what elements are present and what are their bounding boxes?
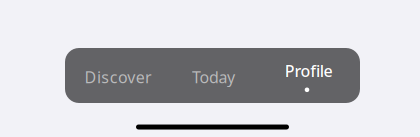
button[interactable]: Discover <box>71 48 166 103</box>
staticText: Profile <box>285 60 333 81</box>
staticText: Discover <box>85 66 152 88</box>
button[interactable]: Today <box>166 48 261 103</box>
staticText: Today <box>192 66 235 88</box>
button[interactable]: Profile <box>261 48 356 103</box>
